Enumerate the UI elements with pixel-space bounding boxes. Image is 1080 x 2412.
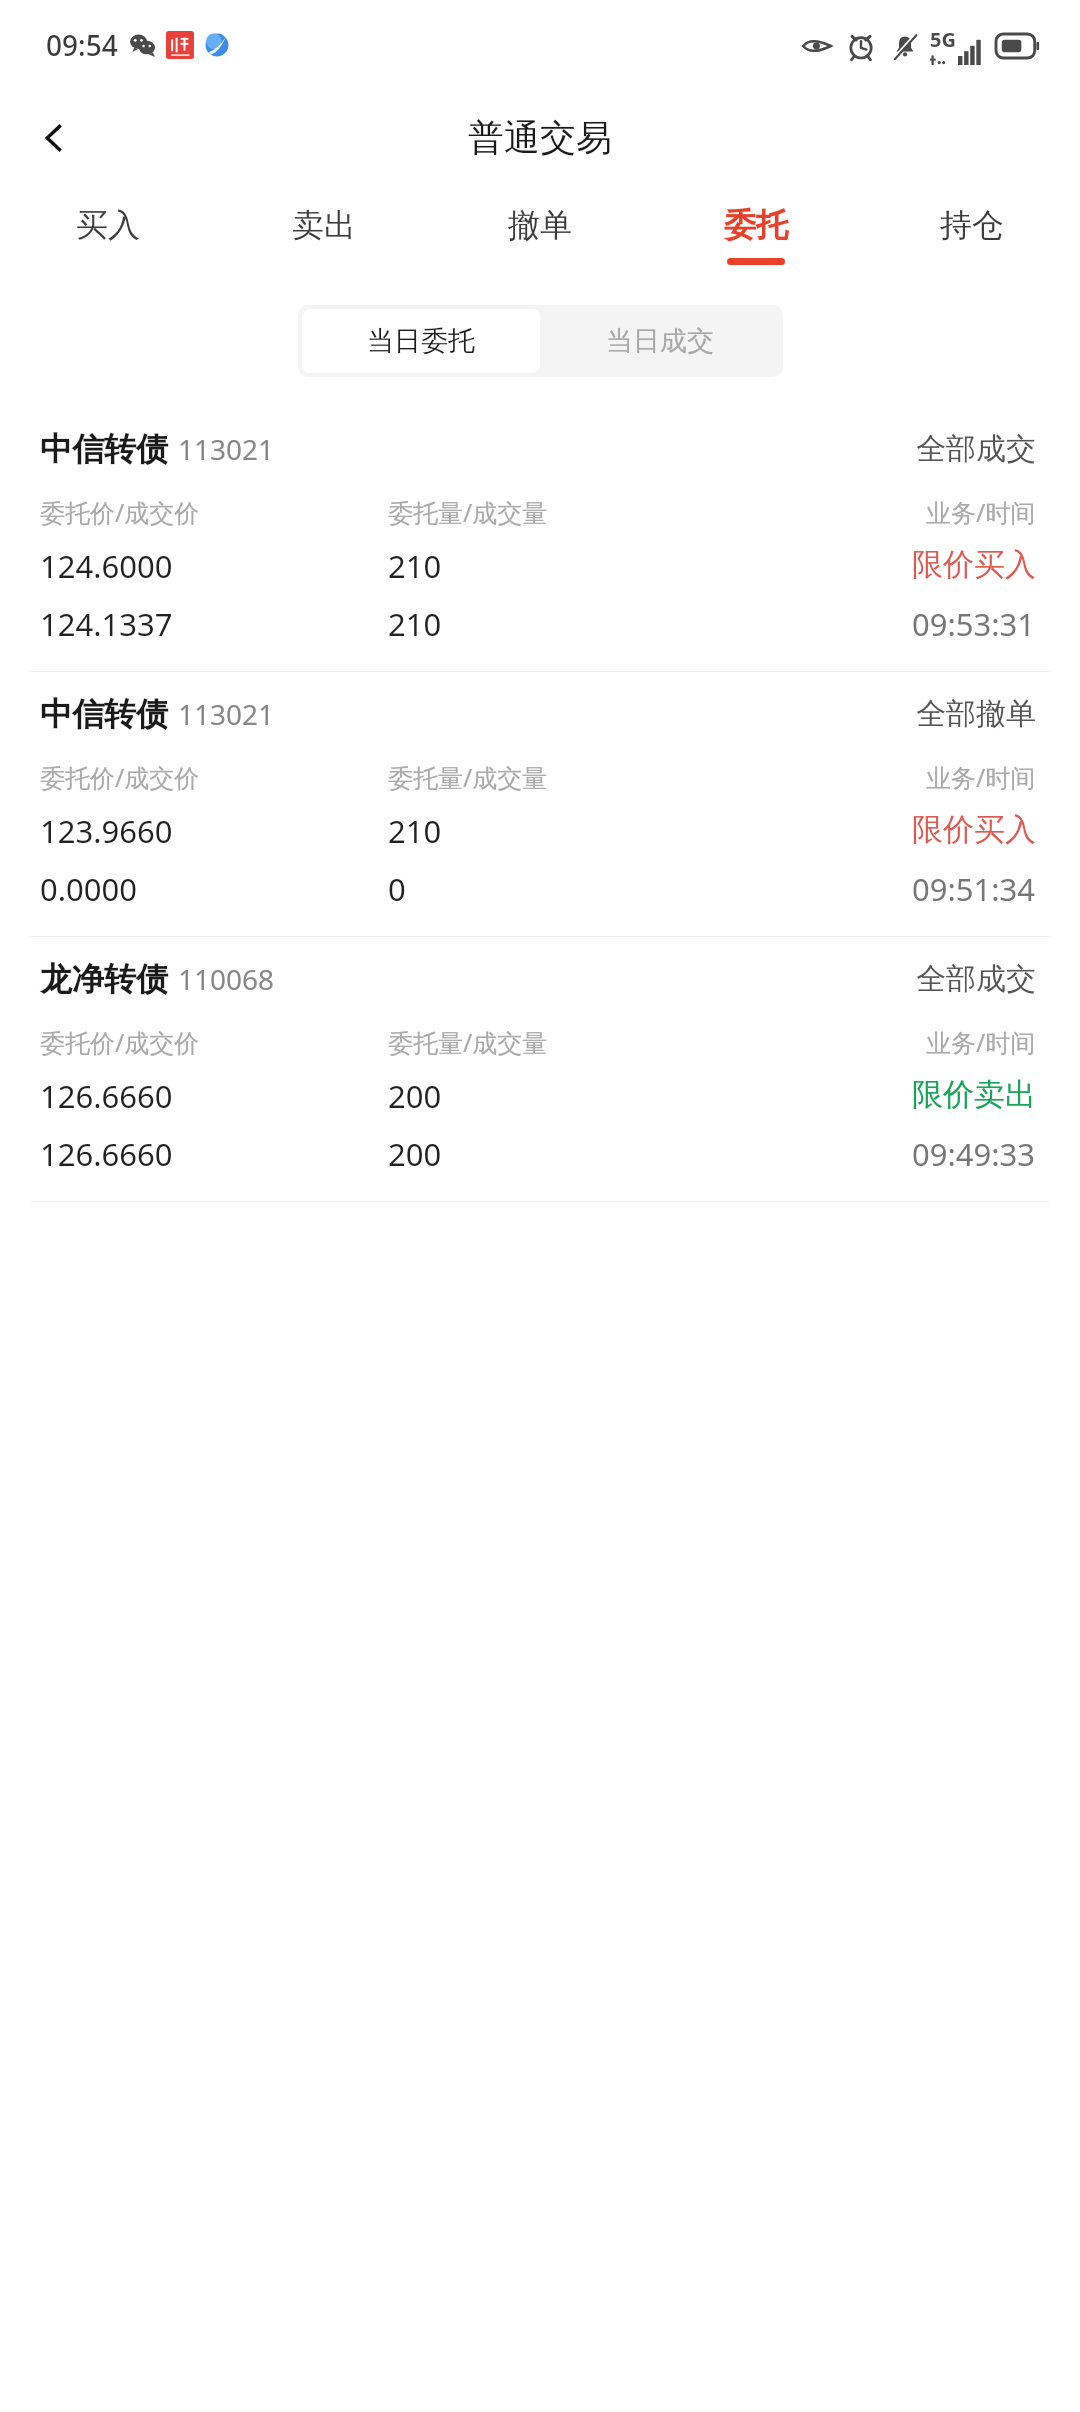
staticText: 09:53:31 [912, 603, 1036, 645]
staticText: 124.1337 [40, 603, 173, 645]
staticText: 限价卖出 [912, 1075, 1036, 1114]
staticText: 业务/时间 [926, 760, 1036, 794]
button[interactable]: 买入 [0, 185, 216, 285]
staticText: 200 [388, 1075, 442, 1117]
button[interactable]: 撤单 [432, 185, 648, 285]
staticText: 卖出 [292, 205, 356, 245]
button[interactable]: 当日成交 [540, 309, 779, 373]
button[interactable]: 当日委托 [302, 309, 540, 373]
staticText: 全部成交 [916, 430, 1036, 468]
staticText: 买入 [76, 205, 140, 245]
staticText: 委托量/成交量 [388, 760, 548, 794]
staticText: 撤单 [508, 205, 572, 245]
staticText: 限价买入 [912, 810, 1036, 849]
staticText: 委托 [724, 205, 788, 245]
staticText: 委托量/成交量 [388, 1025, 548, 1059]
staticText: 0.0000 [40, 868, 137, 910]
staticText: 126.6660 [40, 1133, 173, 1175]
button[interactable]: 卖出 [216, 185, 432, 285]
staticText: 124.6000 [40, 545, 173, 587]
button[interactable]: Back [22, 106, 86, 170]
staticText: 0 [388, 868, 406, 910]
staticText: 113021 [178, 430, 275, 468]
staticText: 业务/时间 [926, 1025, 1036, 1059]
button[interactable]: 中信转债 [0, 407, 1080, 671]
staticText: 当日成交 [606, 324, 714, 358]
staticText: 委托价/成交价 [40, 1025, 200, 1059]
button[interactable]: 龙净转债 [0, 937, 1080, 1201]
staticText: 当日委托 [367, 324, 475, 358]
staticText: 中信转债 [40, 429, 168, 469]
staticText: 业务/时间 [926, 495, 1036, 529]
staticText: 110068 [178, 960, 275, 998]
staticText: 委托量/成交量 [388, 495, 548, 529]
staticText: 普通交易 [468, 115, 612, 160]
staticText: 123.9660 [40, 810, 173, 852]
staticText: 210 [388, 545, 442, 587]
staticText: 全部撤单 [916, 695, 1036, 733]
staticText: 持仓 [940, 205, 1004, 245]
staticText: 中信转债 [40, 694, 168, 734]
staticText: 09:51:34 [912, 868, 1036, 910]
staticText: 委托价/成交价 [40, 760, 200, 794]
staticText: 200 [388, 1133, 442, 1175]
staticText: 09:49:33 [912, 1133, 1036, 1175]
button[interactable]: 委托 [648, 185, 864, 285]
staticText: 限价买入 [912, 545, 1036, 584]
staticText: 126.6660 [40, 1075, 173, 1117]
button[interactable]: 持仓 [864, 185, 1080, 285]
button[interactable]: 中信转债 [0, 672, 1080, 936]
staticText: 龙净转债 [40, 959, 168, 999]
staticText: 210 [388, 810, 442, 852]
staticText: 委托价/成交价 [40, 495, 200, 529]
staticText: 09:54 [46, 26, 118, 64]
staticText: 113021 [178, 695, 275, 733]
staticText: 全部成交 [916, 960, 1036, 998]
staticText: 5G [930, 26, 956, 53]
staticText: 210 [388, 603, 442, 645]
